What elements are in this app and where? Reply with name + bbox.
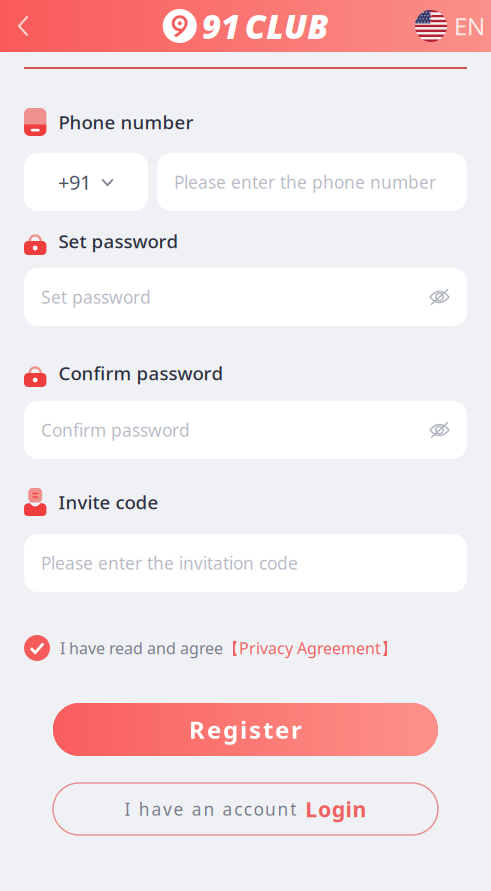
staticText: 【Privacy Agreement】 xyxy=(223,637,397,659)
staticText: Please enter the invitation code xyxy=(41,551,298,574)
button[interactable]: I have an account xyxy=(24,783,467,835)
staticText: Set password xyxy=(58,229,178,253)
button[interactable]: 【Privacy Agreement】 xyxy=(223,637,397,659)
staticText: Phone number xyxy=(58,110,193,134)
staticText: 91 xyxy=(202,4,240,48)
staticText: Login xyxy=(305,795,366,823)
staticText: I have an account xyxy=(125,797,296,820)
staticText: I have read and agree xyxy=(60,637,223,659)
staticText: Confirm password xyxy=(58,361,223,385)
button[interactable]: Back xyxy=(0,0,46,52)
staticText: Set password xyxy=(41,285,151,308)
staticText: Invite code xyxy=(58,490,158,514)
button[interactable]: Language: English xyxy=(415,0,491,52)
staticText: Confirm password xyxy=(41,418,190,441)
button[interactable]: +91 xyxy=(24,153,148,211)
staticText: Register xyxy=(189,714,302,745)
staticText: CLUB xyxy=(245,4,328,48)
staticText: Please enter the phone number xyxy=(174,170,436,193)
staticText: +91 xyxy=(58,169,91,195)
staticText: EN xyxy=(454,10,485,42)
button[interactable]: Agree to the privacy agreement xyxy=(24,635,50,661)
button[interactable]: Register xyxy=(24,703,467,756)
